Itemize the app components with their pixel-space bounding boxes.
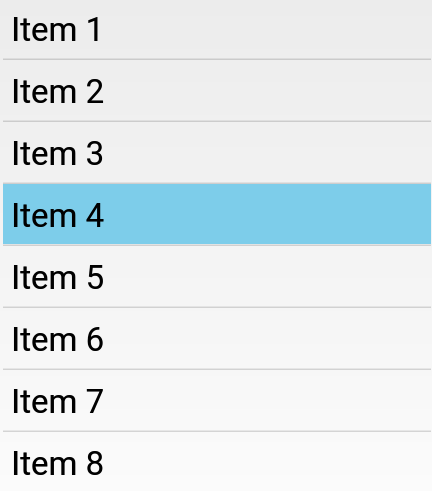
- button[interactable]: Item 4: [3, 184, 431, 246]
- staticText: Item 3: [11, 134, 104, 173]
- staticText: Item 6: [11, 320, 104, 359]
- button[interactable]: Item 1: [3, 0, 431, 60]
- staticText: Item 2: [11, 72, 104, 111]
- button[interactable]: Item 8: [3, 432, 431, 491]
- staticText: Item 1: [11, 10, 104, 49]
- staticText: Item 8: [11, 444, 104, 483]
- staticText: Item 7: [11, 382, 104, 421]
- staticText: Item 3: [11, 134, 104, 173]
- staticText: Item 5: [11, 258, 104, 297]
- staticText: Item 7: [11, 382, 104, 421]
- button[interactable]: Item 2: [3, 60, 431, 122]
- staticText: Item 5: [11, 258, 104, 297]
- staticText: Item 8: [11, 444, 104, 483]
- staticText: Item 4: [11, 196, 104, 235]
- staticText: Item 4: [11, 196, 104, 235]
- staticText: Item 2: [11, 72, 104, 111]
- button[interactable]: Item 3: [3, 122, 431, 184]
- button[interactable]: Item 5: [3, 246, 431, 308]
- staticText: Item 1: [11, 10, 104, 49]
- button[interactable]: Item 6: [3, 308, 431, 370]
- button[interactable]: Item 7: [3, 370, 431, 432]
- staticText: Item 6: [11, 320, 104, 359]
